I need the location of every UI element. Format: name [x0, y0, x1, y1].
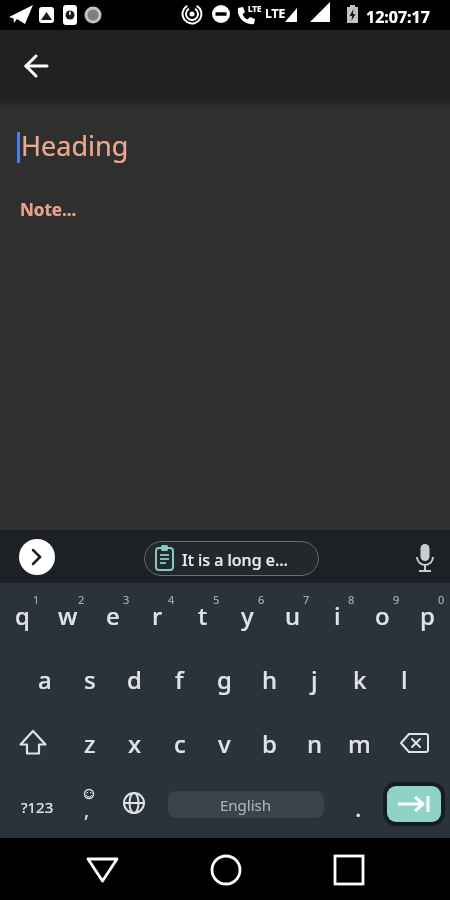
staticText: LTE	[248, 3, 262, 14]
staticText: n	[307, 727, 323, 760]
button[interactable]	[80, 848, 124, 892]
button[interactable]	[66, 775, 110, 839]
button[interactable]	[6, 711, 60, 775]
staticText: Heading	[21, 127, 129, 164]
button[interactable]: l	[382, 647, 427, 711]
staticText: m	[348, 727, 371, 760]
staticText: t	[198, 599, 208, 632]
button[interactable]: i	[315, 583, 360, 647]
staticText: 1	[33, 592, 40, 607]
button[interactable]: k	[337, 647, 382, 711]
button[interactable]: m	[337, 711, 382, 775]
staticText: ,	[84, 797, 90, 823]
button[interactable]	[204, 848, 248, 892]
staticText: e	[106, 599, 120, 632]
staticText: 5	[213, 592, 220, 607]
button[interactable]: y	[225, 583, 270, 647]
button[interactable]: x	[112, 711, 157, 775]
button[interactable]: h	[247, 647, 292, 711]
button[interactable]: .	[336, 775, 380, 839]
staticText: s	[84, 663, 96, 696]
staticText: x	[128, 727, 142, 760]
staticText: 2	[78, 592, 85, 607]
button[interactable]	[327, 848, 371, 892]
staticText: 8	[348, 592, 355, 607]
button[interactable]: e	[90, 583, 135, 647]
button[interactable]: p	[405, 583, 450, 647]
staticText: p	[420, 599, 435, 632]
button[interactable]: r	[135, 583, 180, 647]
button[interactable]: f	[157, 647, 202, 711]
staticText: .	[355, 791, 362, 824]
staticText: y	[241, 599, 254, 632]
staticText: Note...	[20, 198, 77, 221]
staticText: d	[127, 663, 142, 696]
staticText: j	[311, 663, 318, 696]
staticText: a	[38, 663, 52, 696]
staticText: w	[58, 599, 78, 632]
button[interactable]: n	[292, 711, 337, 775]
staticText: c	[174, 727, 186, 760]
button[interactable]: ?123	[6, 775, 68, 839]
staticText: l	[401, 663, 408, 696]
button[interactable]: t	[180, 583, 225, 647]
button[interactable]: a	[22, 647, 67, 711]
staticText: 7	[303, 592, 310, 607]
button[interactable]	[112, 775, 156, 839]
button[interactable]: u	[270, 583, 315, 647]
staticText: k	[353, 663, 367, 696]
staticText: 4	[168, 592, 175, 607]
button[interactable]	[390, 711, 444, 775]
staticText: f	[175, 663, 184, 696]
staticText: It is a long e…	[182, 549, 288, 571]
button[interactable]: b	[247, 711, 292, 775]
button[interactable]: c	[157, 711, 202, 775]
button[interactable]: q	[0, 583, 45, 647]
staticText: o	[375, 599, 390, 632]
button[interactable]: d	[112, 647, 157, 711]
staticText: 6	[258, 592, 265, 607]
staticText: English	[220, 795, 272, 815]
button[interactable]: g	[202, 647, 247, 711]
button[interactable]: s	[67, 647, 112, 711]
staticText: i	[334, 599, 341, 632]
button[interactable]: v	[202, 711, 247, 775]
staticText: u	[285, 599, 301, 632]
staticText: LTE	[265, 5, 286, 21]
staticText: 12:07:17	[366, 6, 430, 28]
staticText: 9	[393, 592, 400, 607]
button[interactable]: w	[45, 583, 90, 647]
button[interactable]: j	[292, 647, 337, 711]
staticText: v	[218, 727, 231, 760]
button[interactable]	[144, 541, 319, 576]
staticText: r	[152, 599, 163, 632]
staticText: b	[262, 727, 277, 760]
staticText: 3	[123, 592, 130, 607]
staticText: 0	[438, 592, 445, 607]
staticText: z	[84, 727, 96, 760]
button[interactable]	[387, 786, 441, 822]
button[interactable]: English	[168, 791, 324, 818]
button[interactable]	[16, 46, 56, 86]
staticText: ?123	[21, 797, 54, 817]
button[interactable]	[405, 538, 445, 578]
staticText: h	[262, 663, 278, 696]
button[interactable]: o	[360, 583, 405, 647]
button[interactable]: z	[67, 711, 112, 775]
staticText: q	[15, 599, 30, 632]
staticText: g	[217, 663, 232, 696]
button[interactable]	[19, 539, 55, 575]
